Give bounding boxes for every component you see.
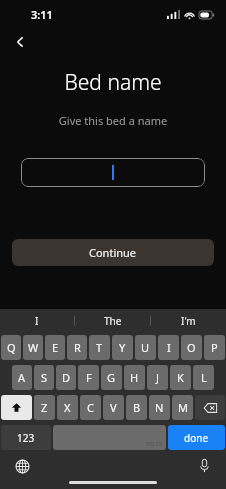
button[interactable]: I (158, 335, 179, 360)
button[interactable]: P (204, 335, 225, 360)
button[interactable]: R (67, 335, 87, 360)
button[interactable]: O (181, 335, 202, 360)
button[interactable]: D (56, 365, 76, 390)
staticText: X (64, 400, 71, 415)
staticText: J (156, 370, 160, 385)
staticText: G (107, 370, 116, 385)
button[interactable]: Shift (1, 395, 32, 420)
staticText: H (130, 370, 139, 385)
staticText: I (167, 340, 171, 355)
button[interactable]: 123 (1, 425, 51, 450)
staticText: K (177, 370, 184, 385)
button[interactable]: Y (112, 335, 133, 360)
button[interactable]: Back (6, 28, 34, 56)
staticText: D (62, 370, 71, 385)
button[interactable]: X (57, 395, 78, 420)
staticText: The (104, 314, 122, 328)
button[interactable]: S (34, 365, 54, 390)
button[interactable]: U (135, 335, 156, 360)
staticText: L (201, 370, 207, 385)
button[interactable]: J (147, 365, 168, 390)
staticText: R (74, 340, 81, 355)
button[interactable]: I (0, 309, 74, 332)
staticText: V (110, 400, 117, 415)
staticText: E (52, 340, 59, 355)
button[interactable]: Voice input (194, 456, 214, 476)
staticText: Z (41, 400, 48, 415)
staticText: F (86, 370, 92, 385)
staticText: Continue (89, 245, 137, 260)
button[interactable]: W (23, 335, 43, 360)
button[interactable]: K (170, 365, 191, 390)
staticText: P (211, 340, 218, 355)
staticText: A (18, 370, 26, 385)
button[interactable] (21, 158, 205, 187)
button[interactable]: M (172, 395, 193, 420)
staticText: Q (7, 340, 16, 355)
staticText: O (187, 340, 196, 355)
button[interactable]: N (149, 395, 170, 420)
staticText: I'm (181, 314, 196, 328)
staticText: EN ES (146, 440, 163, 448)
button[interactable]: A (12, 365, 32, 390)
staticText: done (184, 431, 209, 445)
button[interactable]: Z (34, 395, 55, 420)
button[interactable]: B (126, 395, 147, 420)
button[interactable]: V (103, 395, 124, 420)
staticText: C (87, 400, 94, 415)
staticText: M (178, 400, 188, 415)
staticText: I (35, 314, 39, 328)
staticText: Give this bed a name (0, 113, 226, 128)
button[interactable]: Q (1, 335, 21, 360)
button[interactable]: F (78, 365, 99, 390)
button[interactable]: Backspace (195, 395, 225, 420)
button[interactable]: I'm (151, 309, 226, 332)
button[interactable]: done (168, 425, 225, 450)
button[interactable]: G (101, 365, 122, 390)
staticText: S (41, 370, 48, 385)
button[interactable]: H (124, 365, 145, 390)
staticText: U (141, 340, 150, 355)
staticText: Bed name (0, 68, 226, 97)
button[interactable]: The (75, 309, 150, 332)
button[interactable]: Continue (12, 239, 214, 266)
button[interactable]: Change keyboard language (12, 456, 32, 476)
staticText: 123 (17, 431, 35, 445)
staticText: N (155, 400, 164, 415)
button[interactable]: E (45, 335, 65, 360)
staticText: W (28, 340, 39, 355)
button[interactable]: L (193, 365, 214, 390)
staticText: T (96, 340, 103, 355)
staticText: B (133, 400, 141, 415)
button[interactable]: T (89, 335, 110, 360)
staticText: 3:11 (31, 7, 53, 22)
staticText: Y (119, 340, 126, 355)
button[interactable]: C (80, 395, 101, 420)
